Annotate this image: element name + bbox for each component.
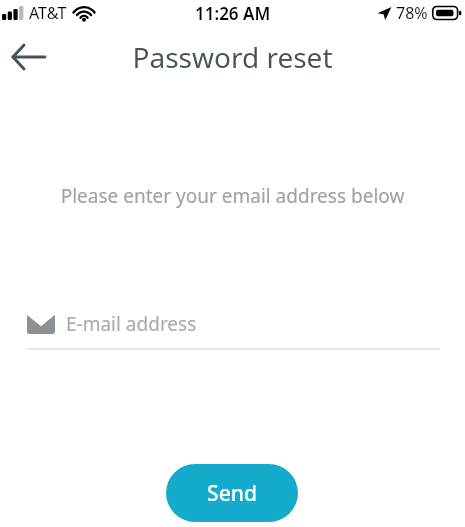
staticText: 78% xyxy=(396,2,428,24)
staticText: AT&T xyxy=(29,2,67,24)
button[interactable]: E-mail address xyxy=(27,308,440,350)
staticText: Please enter your email address below xyxy=(0,183,465,209)
staticText: Password reset xyxy=(132,38,333,76)
staticText: E-mail address xyxy=(66,311,197,337)
button[interactable]: Back xyxy=(4,32,54,82)
button[interactable]: Send xyxy=(166,464,298,522)
staticText: 11:26 AM xyxy=(195,2,271,25)
staticText: Send xyxy=(207,479,257,508)
